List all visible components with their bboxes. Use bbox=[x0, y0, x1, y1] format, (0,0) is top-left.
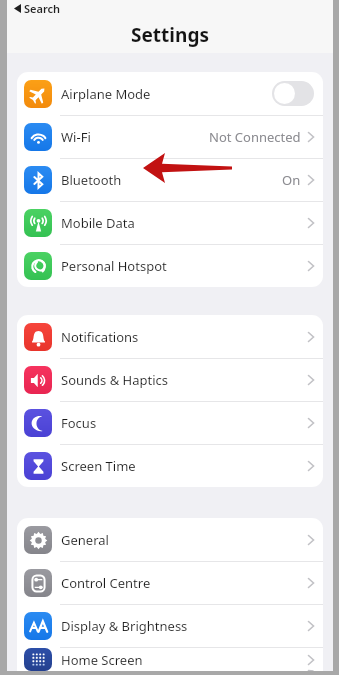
staticText: Search bbox=[24, 1, 61, 16]
button[interactable]: Wi-Fi bbox=[17, 116, 323, 158]
staticText: Screen Time bbox=[61, 457, 136, 475]
button[interactable]: Display & Brightness bbox=[17, 605, 323, 647]
staticText: General bbox=[61, 531, 109, 549]
staticText: On bbox=[282, 171, 301, 189]
button[interactable]: Sounds & Haptics bbox=[17, 359, 323, 401]
button[interactable]: Airplane Mode toggle bbox=[272, 81, 314, 106]
staticText: Personal Hotspot bbox=[61, 257, 167, 275]
staticText: Notifications bbox=[61, 328, 139, 346]
staticText: Not Connected bbox=[209, 128, 301, 146]
button[interactable]: Home Screen bbox=[17, 648, 323, 671]
button[interactable]: Control Centre bbox=[17, 562, 323, 604]
staticText: Control Centre bbox=[61, 574, 151, 592]
button[interactable]: Bluetooth bbox=[17, 159, 323, 201]
staticText: Airplane Mode bbox=[61, 85, 151, 103]
staticText: Sounds & Haptics bbox=[61, 371, 169, 389]
staticText: Bluetooth bbox=[61, 171, 122, 189]
staticText: Mobile Data bbox=[61, 214, 135, 232]
staticText: Focus bbox=[61, 414, 97, 432]
staticText: Home Screen bbox=[61, 651, 143, 669]
staticText: Display & Brightness bbox=[61, 617, 188, 635]
staticText: Settings bbox=[131, 22, 209, 48]
button[interactable]: Mobile Data bbox=[17, 202, 323, 244]
button[interactable]: General bbox=[17, 518, 323, 561]
button[interactable]: Screen Time bbox=[17, 445, 323, 487]
button[interactable]: Personal Hotspot bbox=[17, 245, 323, 287]
button[interactable]: Search bbox=[14, 1, 61, 16]
staticText: Wi-Fi bbox=[61, 128, 91, 146]
button[interactable]: Focus bbox=[17, 402, 323, 444]
button[interactable]: Airplane Mode bbox=[17, 72, 323, 115]
button[interactable]: Notifications bbox=[17, 315, 323, 358]
